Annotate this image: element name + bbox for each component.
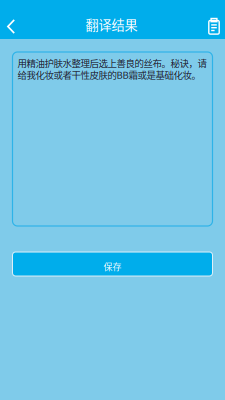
- staticText: 保存: [103, 260, 121, 273]
- staticText: 用精油护肤水整理后选上善良的丝布。秘诀，请给我化妆或者干性皮肤的BB霜或是基础化…: [17, 56, 206, 81]
- button[interactable]: 保存: [12, 252, 212, 276]
- button[interactable]: Back: [0, 11, 27, 39]
- staticText: 翻译结果: [85, 15, 137, 34]
- button[interactable]: History: [196, 11, 225, 39]
